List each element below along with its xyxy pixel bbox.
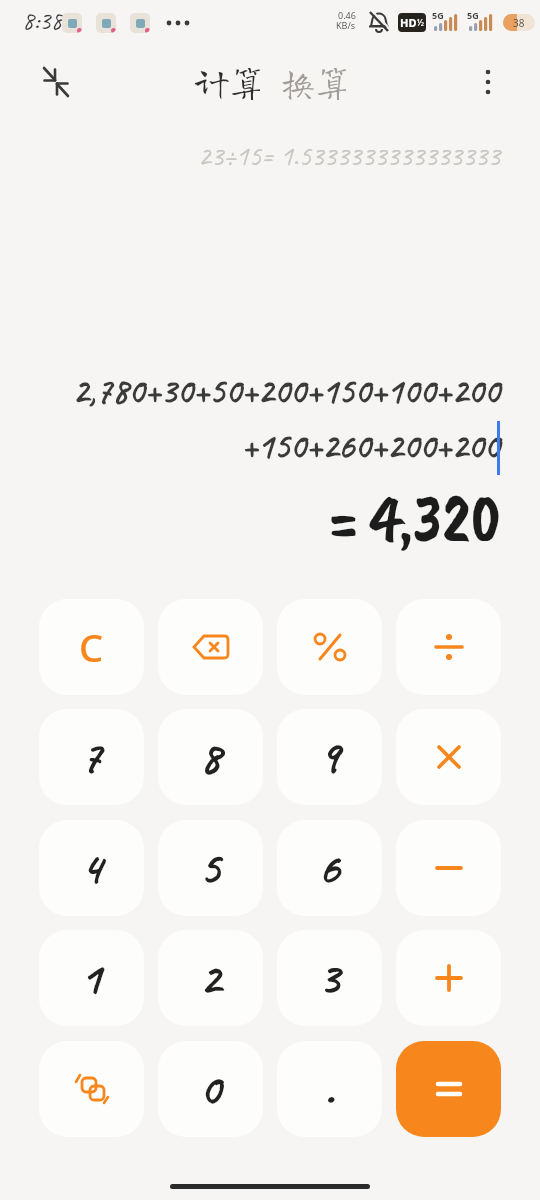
- button[interactable]: 6: [277, 820, 382, 916]
- staticText: 0: [200, 1060, 221, 1118]
- button[interactable]: [396, 599, 501, 695]
- staticText: = 4,320: [0, 476, 501, 562]
- staticText: 0.46: [338, 9, 356, 21]
- staticText: +150+260+200+200: [0, 423, 500, 468]
- staticText: 4: [81, 839, 102, 897]
- staticText: 38: [513, 16, 525, 30]
- staticText: 2,780+30+50+200+150+100+200: [0, 368, 500, 413]
- staticText: ½: [417, 16, 424, 28]
- staticText: 1: [81, 949, 102, 1007]
- button[interactable]: 1: [39, 930, 144, 1026]
- staticText: .: [325, 1060, 335, 1118]
- button[interactable]: 9: [277, 709, 382, 805]
- staticText: 5: [200, 839, 221, 897]
- staticText: 换算: [280, 64, 346, 100]
- staticText: 7: [81, 728, 102, 786]
- staticText: 3: [319, 949, 340, 1007]
- button[interactable]: 换算: [280, 58, 346, 106]
- button[interactable]: 0: [158, 1041, 263, 1137]
- button[interactable]: 4: [39, 820, 144, 916]
- staticText: 5G: [432, 9, 444, 21]
- staticText: 计算: [194, 64, 260, 100]
- staticText: 6: [319, 839, 340, 897]
- button[interactable]: .: [277, 1041, 382, 1137]
- button[interactable]: 3: [277, 930, 382, 1026]
- button[interactable]: [158, 599, 263, 695]
- staticText: 23÷15= 1.5333333333333333: [0, 138, 500, 173]
- button[interactable]: [42, 66, 72, 98]
- button[interactable]: [396, 709, 501, 805]
- staticText: 8:38: [22, 4, 63, 37]
- button[interactable]: 2: [158, 930, 263, 1026]
- button[interactable]: [277, 599, 382, 695]
- staticText: 5G: [467, 9, 479, 21]
- staticText: 9: [319, 728, 340, 786]
- button[interactable]: [396, 930, 501, 1026]
- button[interactable]: C: [39, 599, 144, 695]
- staticText: HD: [400, 15, 417, 30]
- button[interactable]: [39, 1041, 144, 1137]
- button[interactable]: 计算: [194, 58, 260, 106]
- button[interactable]: [396, 1041, 501, 1137]
- button[interactable]: 8: [158, 709, 263, 805]
- staticText: KB/s: [336, 19, 356, 31]
- button[interactable]: [396, 820, 501, 916]
- staticText: 8: [200, 728, 221, 786]
- button[interactable]: [478, 64, 498, 100]
- button[interactable]: 7: [39, 709, 144, 805]
- staticText: 2: [200, 949, 221, 1007]
- staticText: C: [79, 621, 104, 673]
- button[interactable]: 5: [158, 820, 263, 916]
